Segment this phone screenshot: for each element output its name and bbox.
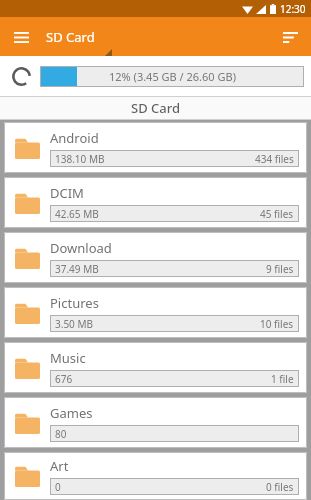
staticText: Music: [50, 349, 86, 367]
button[interactable]: Pictures: [4, 287, 307, 338]
button[interactable]: Android: [4, 122, 307, 173]
staticText: 12% (3.45 GB / 26.60 GB): [109, 69, 236, 84]
staticText: 42.65 MB: [55, 207, 99, 221]
staticText: 10 files: [260, 317, 294, 331]
button[interactable]: 12% (3.45 GB / 26.60 GB): [40, 66, 304, 87]
staticText: 3.50 MB: [55, 317, 94, 331]
staticText: 9 files: [266, 262, 294, 276]
staticText: 0: [55, 480, 61, 494]
staticText: Games: [50, 404, 93, 422]
staticText: 37.49 MB: [55, 262, 99, 276]
staticText: Android: [50, 129, 99, 147]
button[interactable]: Art: [4, 452, 307, 500]
button[interactable]: Games: [4, 397, 307, 448]
button[interactable]: SD Card: [46, 28, 95, 46]
staticText: DCIM: [50, 184, 84, 202]
staticText: 676: [55, 372, 73, 386]
button[interactable]: Open navigation menu: [8, 24, 34, 50]
staticText: 1 file: [271, 372, 294, 386]
staticText: 0 files: [266, 480, 294, 494]
staticText: SD Card: [46, 28, 95, 46]
staticText: 80: [55, 427, 67, 441]
button[interactable]: Refresh: [7, 62, 35, 90]
button[interactable]: Download: [4, 232, 307, 283]
button[interactable]: Sort: [277, 24, 303, 50]
button[interactable]: Music: [4, 342, 307, 393]
staticText: Art: [50, 457, 69, 475]
button[interactable]: DCIM: [4, 177, 307, 228]
staticText: 12:30: [280, 2, 306, 16]
staticText: 138.10 MB: [55, 152, 105, 166]
staticText: SD Card: [131, 99, 181, 117]
staticText: 434 files: [255, 152, 294, 166]
staticText: Pictures: [50, 294, 99, 312]
staticText: 45 files: [260, 207, 294, 221]
staticText: Download: [50, 239, 112, 257]
